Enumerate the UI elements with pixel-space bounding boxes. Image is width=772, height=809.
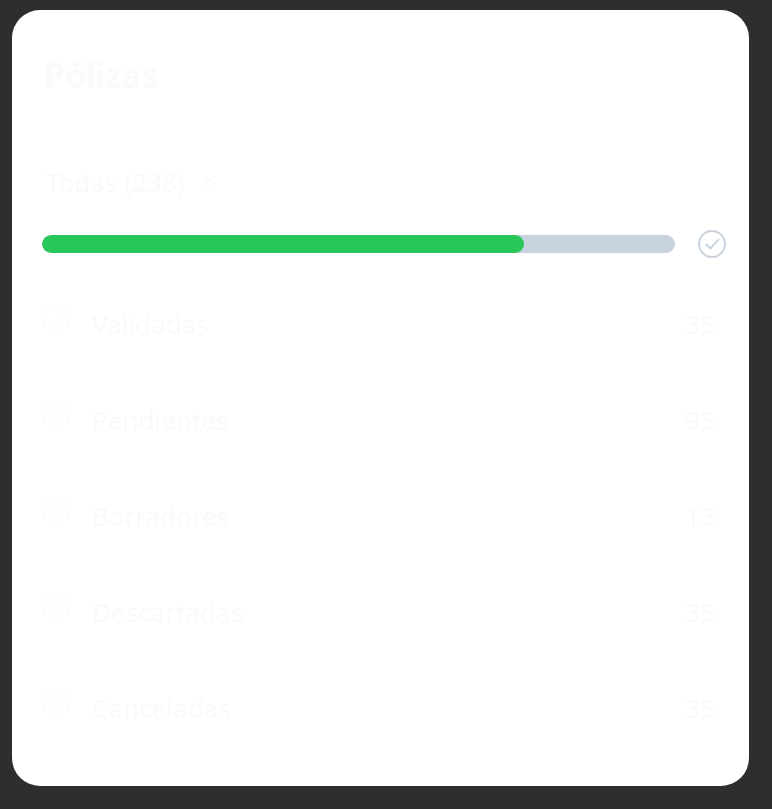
button[interactable]: Validadas [697,229,727,259]
